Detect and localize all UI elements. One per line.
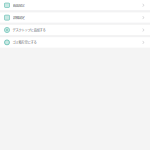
staticText: 詳細設定 — [12, 15, 24, 20]
button[interactable]: 詳細設定 — [0, 12, 150, 23]
button[interactable]: ゴミ箱を空にする — [0, 37, 150, 48]
staticText: 画面設定 — [12, 3, 24, 8]
staticText: デスクトップに追加する — [12, 28, 45, 32]
button[interactable]: デスクトップに追加する — [0, 25, 150, 35]
staticText: ゴミ箱を空にする — [12, 40, 36, 45]
button[interactable]: 画面設定 — [0, 0, 150, 10]
